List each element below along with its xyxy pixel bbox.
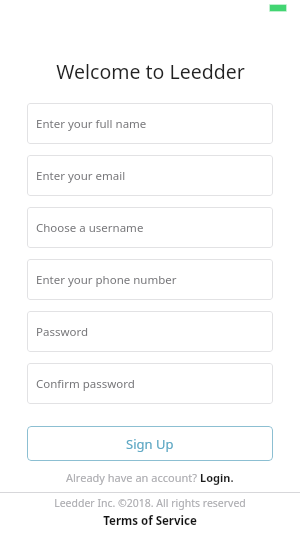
button[interactable]: Password <box>27 311 273 352</box>
button[interactable]: Enter your email <box>27 155 273 196</box>
staticText: Confirm password <box>36 376 135 392</box>
button[interactable]: Already have an account? <box>0 470 300 485</box>
button[interactable]: Terms of Service <box>0 513 300 529</box>
staticText: Terms of Service <box>103 513 197 529</box>
staticText: Sign Up <box>126 435 174 453</box>
button[interactable]: Choose a username <box>27 207 273 248</box>
staticText: Login. <box>200 470 234 485</box>
staticText: Password <box>36 324 89 340</box>
button[interactable]: Enter your full name <box>27 103 273 144</box>
staticText: Leedder Inc. ©2018. All rights reserved <box>54 496 246 510</box>
staticText: Enter your phone number <box>36 272 177 288</box>
button[interactable]: Enter your phone number <box>27 259 273 300</box>
staticText: Already have an account? <box>66 470 200 485</box>
button[interactable]: Confirm password <box>27 363 273 404</box>
staticText: Choose a username <box>36 220 144 236</box>
staticText: Enter your full name <box>36 116 147 132</box>
staticText: Welcome to Leedder <box>56 58 245 85</box>
button[interactable]: Sign Up <box>27 426 273 461</box>
staticText: Enter your email <box>36 168 126 184</box>
